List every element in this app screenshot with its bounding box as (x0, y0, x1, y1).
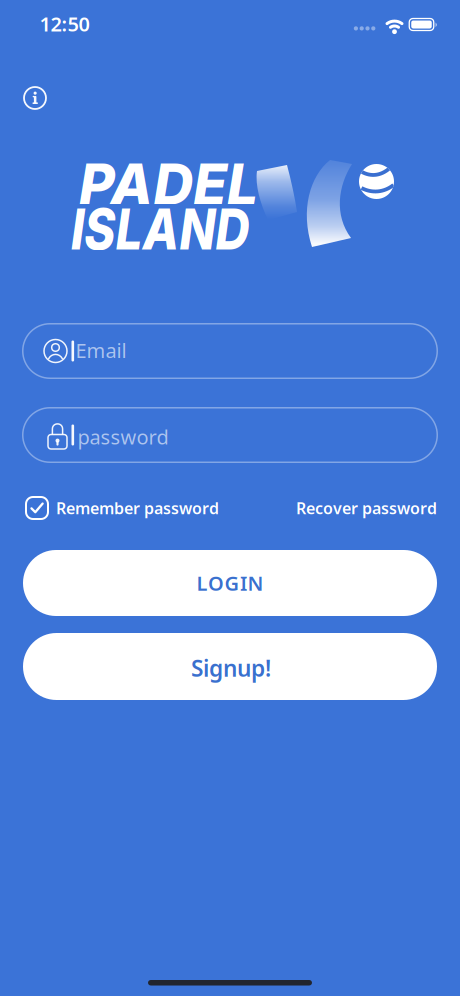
staticText: Recover password (296, 497, 437, 519)
button[interactable]: password (22, 407, 438, 463)
button[interactable]: LOGIN (23, 550, 437, 616)
staticText: 12:50 (39, 10, 89, 37)
staticText: Signup! (191, 653, 271, 683)
staticText: password (77, 423, 168, 450)
button[interactable]: Remember password (25, 496, 219, 520)
staticText: PADEL (79, 149, 255, 215)
staticText: ISLAND (71, 194, 275, 260)
staticText: Email (75, 337, 126, 364)
staticText: Remember password (56, 497, 219, 519)
button[interactable] (24, 87, 46, 109)
staticText: LOGIN (196, 570, 263, 596)
button[interactable]: Email (22, 323, 438, 379)
button[interactable]: Signup! (23, 633, 437, 700)
button[interactable]: Recover password (296, 497, 437, 519)
